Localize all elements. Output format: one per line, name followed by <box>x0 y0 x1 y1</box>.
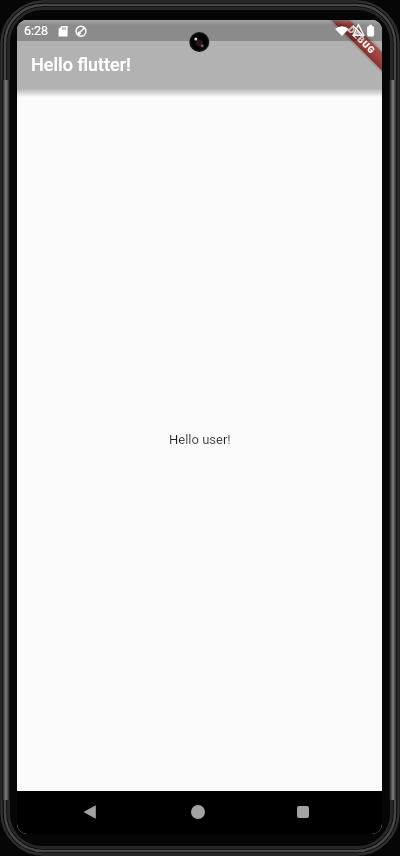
staticText: Hello user! <box>169 432 231 447</box>
button[interactable] <box>74 796 106 828</box>
button[interactable] <box>287 796 319 828</box>
staticText: DEBUG <box>345 25 378 57</box>
staticText: 6:28 <box>24 23 49 38</box>
button[interactable] <box>182 796 214 828</box>
staticText: Hello flutter! <box>31 54 131 75</box>
